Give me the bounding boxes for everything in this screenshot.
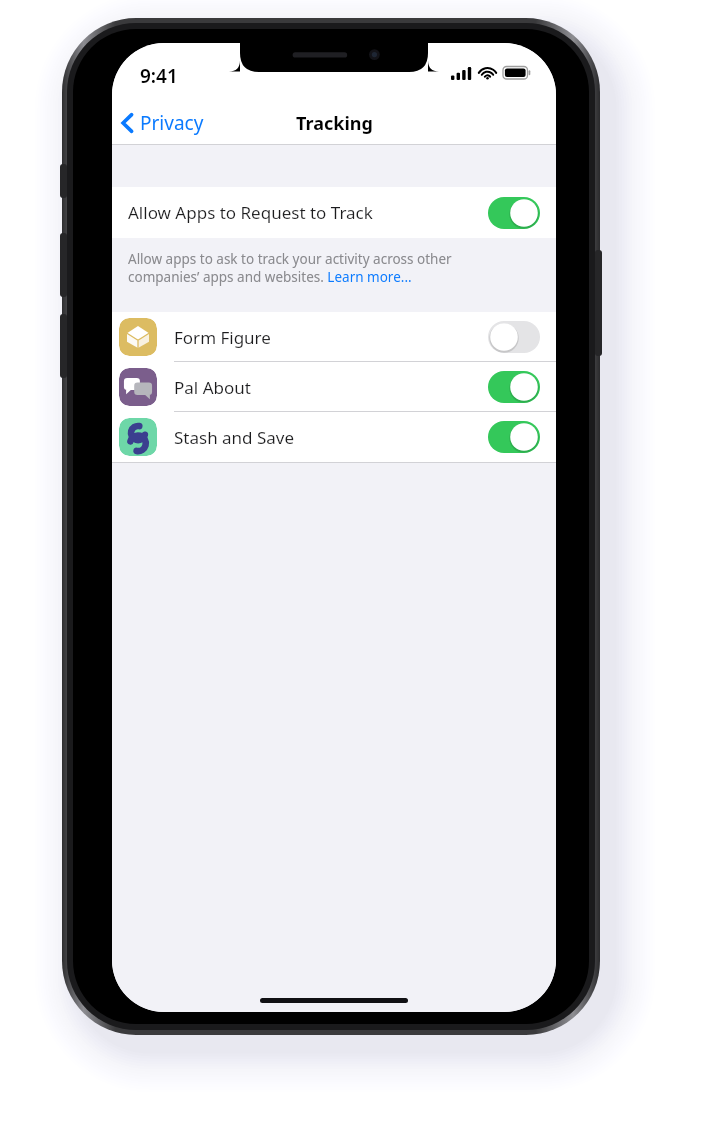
staticText: Allow Apps to Request to Track bbox=[128, 201, 373, 224]
staticText: Form Figure bbox=[174, 326, 271, 349]
button[interactable]: Allow Apps to Request to Track bbox=[112, 187, 556, 238]
button[interactable]: Privacy bbox=[112, 101, 214, 145]
button[interactable]: On bbox=[488, 197, 540, 229]
staticText: Tracking bbox=[296, 111, 373, 136]
staticText: Pal About bbox=[174, 376, 251, 399]
button[interactable]: Form Figure bbox=[112, 312, 556, 362]
staticText: 9:41 bbox=[140, 63, 178, 89]
button[interactable]: Stash and Save bbox=[112, 412, 556, 462]
staticText: Allow apps to ask to track your activity… bbox=[128, 250, 510, 286]
staticText: Privacy bbox=[140, 110, 204, 136]
button[interactable]: Off bbox=[488, 321, 540, 353]
button[interactable]: Pal About bbox=[112, 362, 556, 412]
staticText: Stash and Save bbox=[174, 426, 295, 449]
button[interactable]: On bbox=[488, 421, 540, 453]
button[interactable]: On bbox=[488, 371, 540, 403]
